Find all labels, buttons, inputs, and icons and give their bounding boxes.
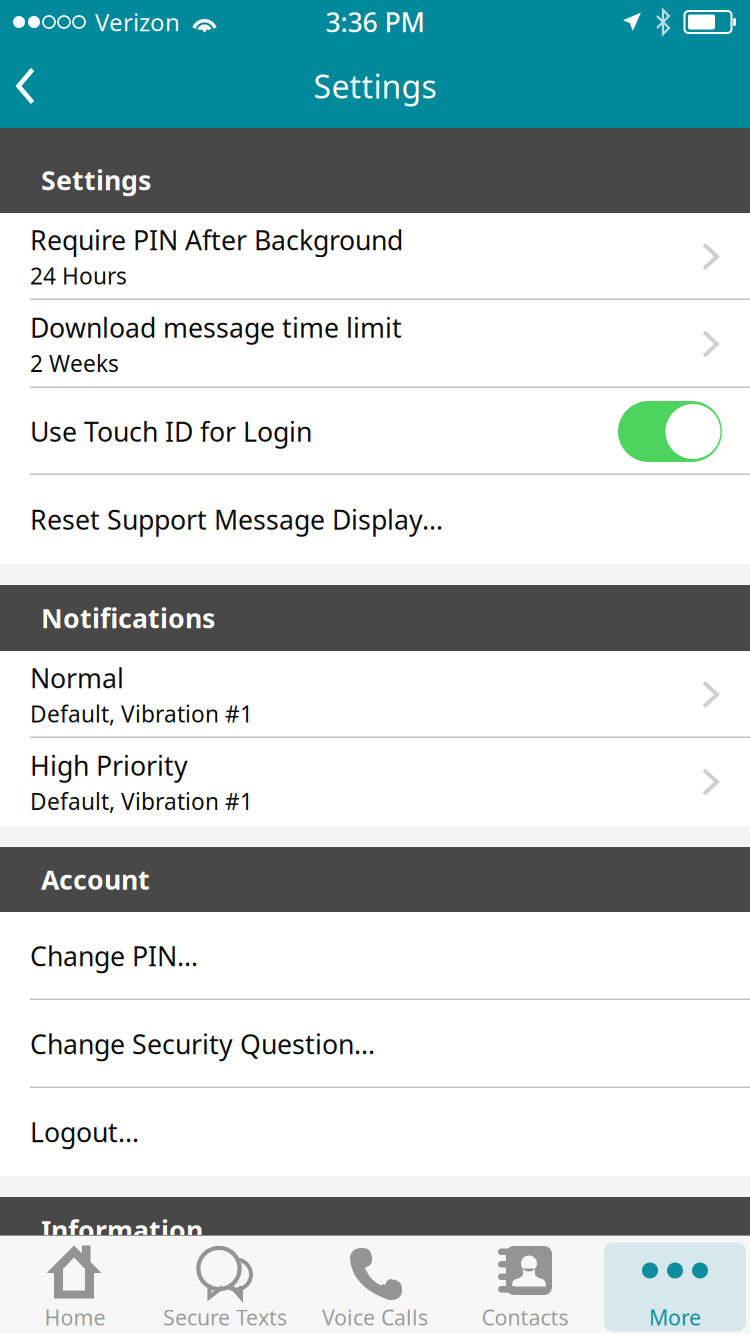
button[interactable]: High Priority <box>0 738 750 826</box>
staticText: Secure Texts <box>163 1303 287 1331</box>
staticText: Use Touch ID for Login <box>30 414 312 449</box>
button[interactable]: More <box>600 1236 750 1334</box>
staticText: Account <box>41 862 150 897</box>
staticText: More <box>649 1303 701 1331</box>
staticText: 24 Hours <box>30 261 127 291</box>
staticText: Information <box>41 1212 203 1248</box>
staticText: Contacts <box>481 1303 568 1331</box>
staticText: Change Security Question… <box>30 1026 375 1062</box>
button[interactable]: Secure Texts <box>150 1236 300 1334</box>
staticText: Voice Calls <box>322 1303 428 1331</box>
staticText: Logout… <box>30 1114 139 1150</box>
staticText: Default, Vibration #1 <box>30 699 253 729</box>
staticText: Require PIN After Background <box>30 222 403 258</box>
button[interactable]: Change Security Question… <box>0 1000 750 1088</box>
button[interactable]: Require PIN After Background <box>0 213 750 300</box>
button[interactable]: Download message time limit <box>0 300 750 388</box>
button[interactable]: Logout… <box>0 1088 750 1176</box>
button[interactable]: Back <box>0 46 57 125</box>
button[interactable]: Home <box>0 1236 150 1334</box>
button[interactable]: Reset Support Message Display… <box>0 475 750 564</box>
staticText: Settings <box>41 162 151 198</box>
staticText: Change PIN… <box>30 938 198 974</box>
staticText: Download message time limit <box>30 310 402 345</box>
staticText: High Priority <box>30 748 188 783</box>
staticText: 2 Weeks <box>30 348 119 378</box>
staticText: Normal <box>30 660 124 696</box>
button[interactable]: Use Touch ID for Login <box>618 401 722 462</box>
staticText: Verizon <box>95 6 180 38</box>
button[interactable]: Contacts <box>450 1236 600 1334</box>
staticText: Settings <box>313 65 436 107</box>
staticText: Home <box>44 1303 105 1331</box>
button[interactable]: Voice Calls <box>300 1236 450 1334</box>
staticText: Reset Support Message Display… <box>30 502 443 537</box>
staticText: Notifications <box>41 600 215 636</box>
button[interactable]: Change PIN… <box>0 912 750 1000</box>
staticText: Default, Vibration #1 <box>30 786 253 816</box>
staticText: 3:36 PM <box>325 4 424 40</box>
button[interactable]: Normal <box>0 651 750 738</box>
